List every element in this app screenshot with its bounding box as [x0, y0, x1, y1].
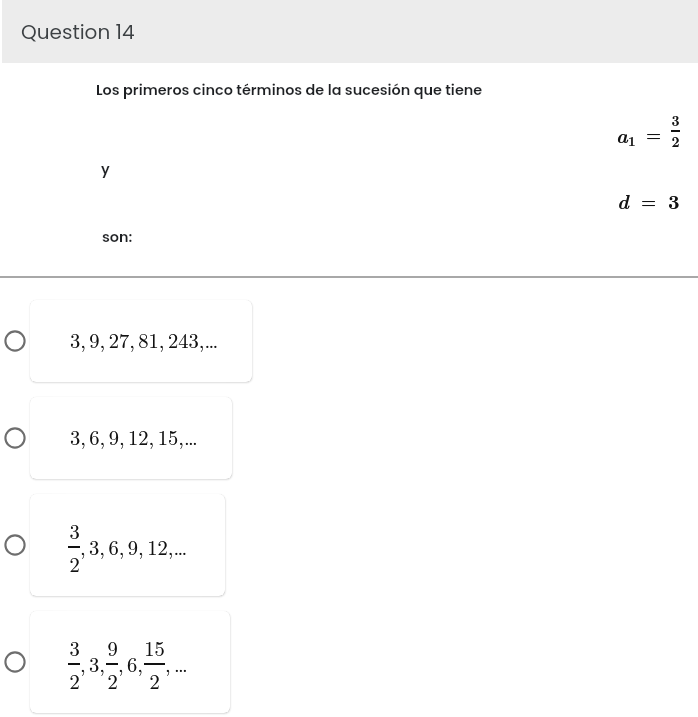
staticText: 2 [671, 131, 680, 151]
button[interactable]: Select answer [0, 494, 698, 596]
staticText: = [641, 189, 657, 213]
other: Select answer [0, 423, 30, 453]
staticText: 3 [671, 110, 680, 130]
other: Select answer [0, 530, 30, 560]
staticText: 3 [69, 633, 80, 662]
staticText: 2 [69, 549, 80, 578]
staticText: 15 [144, 633, 165, 662]
staticText: son: [102, 227, 133, 247]
staticText: 2 [69, 666, 80, 695]
staticText: Question 14 [21, 18, 135, 46]
staticText: , … [165, 649, 188, 678]
staticText: d [617, 186, 629, 215]
staticText: 2 [671, 131, 680, 151]
staticText: 15 [144, 633, 165, 662]
staticText: Los primeros cinco términos de la sucesi… [96, 80, 483, 100]
staticText: 1 [628, 131, 636, 150]
staticText: , 6, [118, 649, 144, 678]
button[interactable]: Select answer [0, 397, 698, 479]
staticText: y [101, 159, 110, 179]
staticText: = [641, 189, 657, 213]
staticText: 3, 6, 9, 12, 15,… [70, 422, 198, 451]
staticText: , 3, [80, 649, 106, 678]
staticText: 9 [107, 633, 118, 662]
staticText: 2 [69, 549, 80, 578]
staticText: 2 [149, 666, 160, 695]
staticText: , … [165, 649, 188, 678]
staticText: 3 [668, 186, 680, 215]
staticText: 2 [149, 666, 160, 695]
staticText: 3, 9, 27, 81, 243,… [70, 325, 219, 354]
other: Select answer [0, 647, 30, 677]
staticText: 3 [668, 186, 680, 215]
staticText: 3 [69, 516, 80, 545]
staticText: 9 [107, 633, 118, 662]
staticText: 2 [107, 666, 118, 695]
button[interactable]: Select answer [0, 300, 698, 382]
staticText: 3 [69, 633, 80, 662]
staticText: a [616, 120, 628, 149]
staticText: , 6, [118, 649, 144, 678]
staticText: 3 [69, 516, 80, 545]
staticText: 1 [628, 131, 636, 150]
staticText: 2 [107, 666, 118, 695]
staticText: = [646, 122, 662, 146]
staticText: , 3, [80, 649, 106, 678]
staticText: , 3, 6, 9, 12,… [80, 532, 188, 561]
staticText: a [616, 120, 628, 149]
staticText: = [646, 122, 662, 146]
other: Select answer [0, 326, 30, 356]
staticText: 2 [69, 666, 80, 695]
staticText: 3, 9, 27, 81, 243,… [70, 325, 219, 354]
staticText: 3, 6, 9, 12, 15,… [70, 422, 198, 451]
staticText: , 3, 6, 9, 12,… [80, 532, 188, 561]
button[interactable]: Select answer [0, 611, 698, 713]
button[interactable]: Question 14 [2, 0, 698, 63]
staticText: d [617, 186, 629, 215]
staticText: 3 [671, 110, 680, 130]
